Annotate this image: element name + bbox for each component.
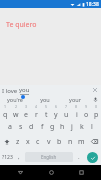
button[interactable]: you: [30, 95, 60, 104]
button[interactable]: x: [23, 134, 33, 149]
button[interactable]: a: [4, 119, 15, 134]
button[interactable]: Back: [10, 165, 30, 180]
staticText: y: [54, 110, 58, 119]
staticText: you: [19, 86, 30, 94]
staticText: 18:38: [86, 1, 99, 8]
staticText: 8: [75, 104, 78, 109]
button[interactable]: Voice input: [90, 95, 101, 104]
button[interactable]: h: [57, 119, 67, 134]
button[interactable]: 5: [41, 104, 51, 119]
staticText: e: [24, 110, 28, 119]
staticText: 6: [55, 104, 58, 109]
button[interactable]: English: [25, 152, 73, 162]
staticText: d: [29, 122, 34, 132]
staticText: I love: [2, 87, 19, 95]
staticText: 0: [95, 104, 98, 109]
staticText: you're: [7, 96, 23, 103]
staticText: w: [13, 110, 19, 119]
button[interactable]: 3: [21, 104, 31, 119]
staticText: 5: [45, 104, 48, 109]
staticText: m: [78, 137, 85, 147]
button[interactable]: c: [33, 134, 43, 149]
button[interactable]: 4: [31, 104, 41, 119]
staticText: l: [91, 122, 93, 132]
staticText: h: [60, 122, 65, 132]
staticText: you: [40, 96, 50, 103]
staticText: 3: [25, 104, 28, 109]
staticText: English: [41, 154, 57, 160]
button[interactable]: Period: [74, 149, 84, 165]
button[interactable]: n: [65, 134, 76, 149]
staticText: 7: [65, 104, 68, 109]
button[interactable]: 9: [81, 104, 91, 119]
button[interactable]: Shift: [0, 134, 13, 149]
button[interactable]: Recent apps: [71, 165, 91, 180]
button[interactable]: Home: [41, 165, 61, 180]
button[interactable]: 6: [51, 104, 61, 119]
staticText: ?123: [2, 154, 13, 161]
staticText: v: [47, 137, 51, 147]
staticText: 9: [85, 104, 88, 109]
staticText: .: [78, 153, 80, 161]
button[interactable]: ?123: [1, 149, 14, 165]
staticText: x: [26, 137, 30, 147]
staticText: f: [41, 122, 44, 132]
staticText: s: [19, 122, 23, 132]
button[interactable]: 8: [71, 104, 81, 119]
staticText: t: [45, 110, 48, 119]
staticText: j: [71, 122, 73, 132]
button[interactable]: m: [76, 134, 87, 149]
button[interactable]: Comma: [14, 149, 24, 165]
button[interactable]: b: [54, 134, 65, 149]
staticText: c: [36, 137, 40, 147]
staticText: 1: [4, 104, 7, 109]
staticText: ,: [18, 153, 20, 161]
staticText: r: [35, 110, 38, 119]
button[interactable]: 2: [11, 104, 21, 119]
button[interactable]: Send: [87, 152, 98, 163]
staticText: k: [80, 122, 84, 132]
staticText: your: [69, 96, 81, 103]
button[interactable]: d: [26, 119, 37, 134]
staticText: 2: [15, 104, 18, 109]
button[interactable]: f: [37, 119, 47, 134]
button[interactable]: Backspace: [87, 134, 101, 149]
button[interactable]: j: [67, 119, 77, 134]
staticText: a: [8, 122, 12, 132]
button[interactable]: 0: [91, 104, 101, 119]
button[interactable]: Clear text: [91, 86, 99, 94]
staticText: u: [64, 110, 69, 119]
button[interactable]: 1: [0, 104, 11, 119]
staticText: p: [94, 110, 99, 119]
staticText: g: [50, 122, 55, 132]
button[interactable]: l: [87, 119, 97, 134]
staticText: o: [84, 110, 89, 119]
staticText: i: [76, 110, 78, 119]
staticText: q: [3, 110, 8, 119]
staticText: Te quiero: [6, 20, 37, 30]
button[interactable]: z: [13, 134, 23, 149]
staticText: b: [57, 137, 62, 147]
button[interactable]: k: [77, 119, 87, 134]
button[interactable]: 7: [61, 104, 71, 119]
button[interactable]: s: [15, 119, 26, 134]
button[interactable]: g: [47, 119, 57, 134]
button[interactable]: your: [60, 95, 90, 104]
staticText: 4: [35, 104, 38, 109]
button[interactable]: v: [43, 134, 54, 149]
staticText: z: [16, 137, 20, 147]
staticText: n: [68, 137, 73, 147]
button[interactable]: you're: [0, 95, 30, 104]
